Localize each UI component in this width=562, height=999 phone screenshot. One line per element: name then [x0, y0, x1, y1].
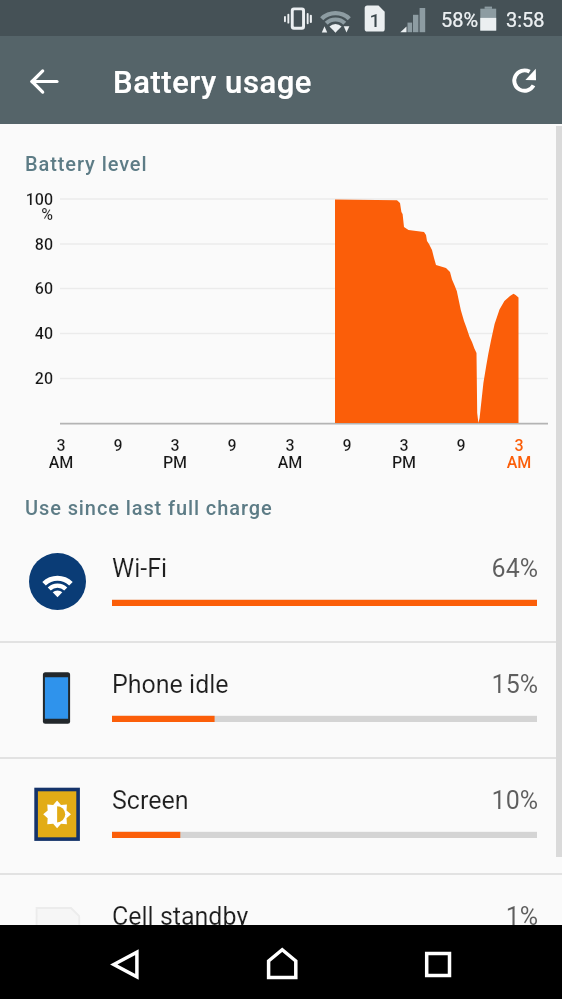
- staticText: 9: [317, 436, 377, 455]
- staticText: Wi-Fi: [112, 554, 168, 583]
- staticText: 64%: [380, 554, 538, 583]
- button[interactable]: Home: [188, 925, 375, 999]
- button[interactable]: Cell standby: [0, 873, 562, 989]
- staticText: 100: [0, 190, 53, 209]
- staticText: 9: [431, 436, 491, 455]
- button[interactable]: Wi-Fi: [0, 525, 562, 641]
- staticText: AM: [489, 453, 549, 472]
- staticText: PM: [374, 453, 434, 472]
- button[interactable]: Refresh: [497, 51, 553, 107]
- staticText: AM: [31, 453, 91, 472]
- staticText: 80: [0, 235, 53, 254]
- staticText: 3: [31, 436, 91, 455]
- staticText: 3: [374, 436, 434, 455]
- staticText: 58%: [441, 8, 479, 31]
- staticText: 60: [0, 279, 53, 298]
- staticText: 3:58: [506, 8, 545, 31]
- staticText: Cell standby: [112, 902, 249, 931]
- staticText: 9: [88, 436, 148, 455]
- staticText: PM: [145, 453, 205, 472]
- button[interactable]: Phone idle: [0, 641, 562, 757]
- button[interactable]: Recent apps: [375, 925, 562, 999]
- staticText: 9: [202, 436, 262, 455]
- staticText: Battery level: [25, 152, 148, 175]
- staticText: 1%: [380, 902, 538, 931]
- staticText: 15%: [380, 670, 538, 699]
- staticText: Use since last full charge: [25, 496, 273, 519]
- button[interactable]: Back: [0, 925, 188, 999]
- staticText: 1: [366, 9, 384, 31]
- staticText: Phone idle: [112, 670, 229, 699]
- staticText: 3: [489, 436, 549, 455]
- button[interactable]: Screen: [0, 757, 562, 873]
- staticText: AM: [260, 453, 320, 472]
- staticText: 3: [260, 436, 320, 455]
- staticText: 40: [0, 324, 53, 343]
- staticText: Screen: [112, 786, 189, 815]
- button[interactable]: Navigate up: [15, 51, 73, 109]
- staticText: Battery usage: [113, 64, 312, 100]
- staticText: 3: [145, 436, 205, 455]
- staticText: 10%: [380, 786, 538, 815]
- staticText: %: [0, 205, 53, 224]
- staticText: 20: [0, 369, 53, 388]
